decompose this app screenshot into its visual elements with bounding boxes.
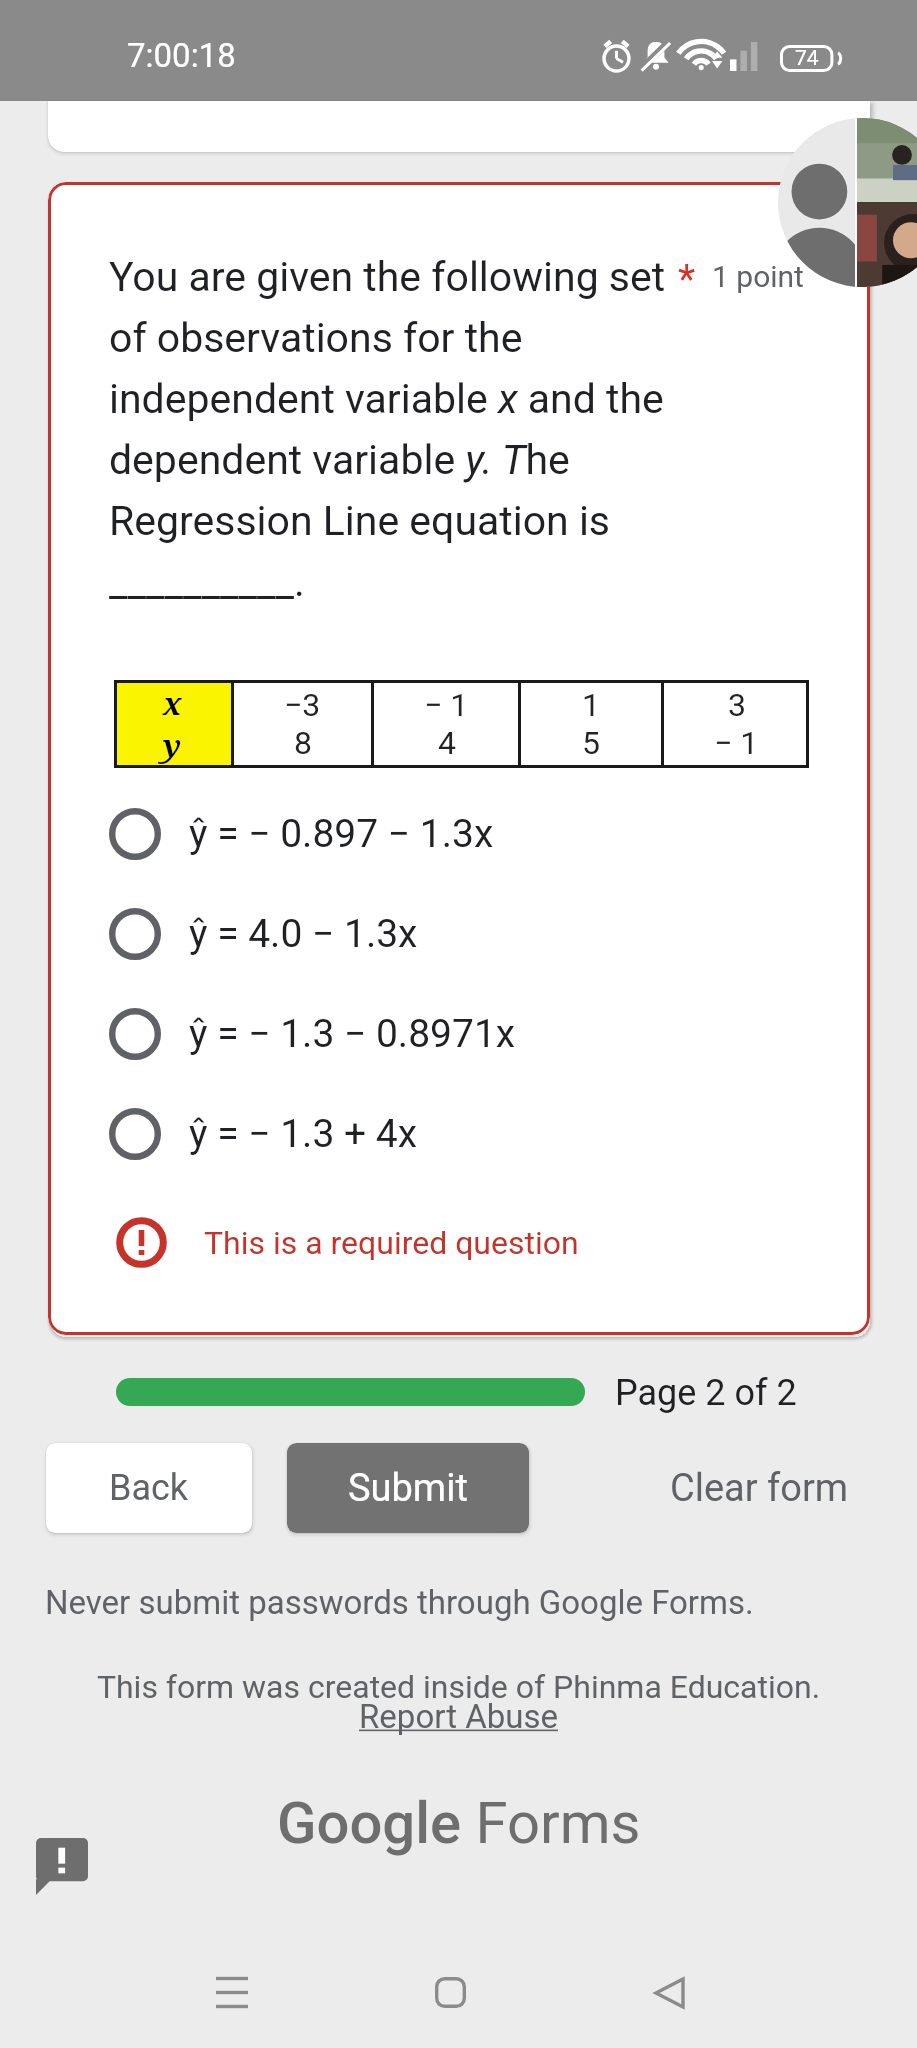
staticText: Clear form xyxy=(670,1466,849,1511)
staticText: Page 2 of 2 xyxy=(615,1372,797,1414)
staticText: − 1 xyxy=(714,724,759,762)
staticText: 5 xyxy=(582,724,600,762)
button[interactable]: Back xyxy=(629,1952,710,2033)
staticText: Submit xyxy=(348,1466,468,1511)
staticText: 1 xyxy=(582,686,600,724)
staticText: ŷ = 4.0 − 1.3x xyxy=(189,911,418,957)
staticText: x xyxy=(163,682,182,724)
staticText: ŷ = − 1.3 − 0.8971x xyxy=(189,1011,516,1057)
staticText: Never submit passwords through Google Fo… xyxy=(45,1583,754,1622)
staticText: You are given the following set of obser… xyxy=(109,253,689,606)
button[interactable]: Back xyxy=(46,1443,252,1533)
staticText: −3 xyxy=(284,686,321,724)
button[interactable]: Home xyxy=(410,1952,491,2033)
staticText: ŷ = − 0.897 − 1.3x xyxy=(189,811,494,857)
staticText: 8 xyxy=(294,724,312,762)
staticText: 74 xyxy=(795,46,819,71)
staticText: Report Abuse xyxy=(0,1697,917,1736)
staticText: Back xyxy=(109,1467,189,1509)
button[interactable]: Video call participant xyxy=(778,118,917,287)
button[interactable]: ŷ = 4.0 − 1.3x xyxy=(106,884,816,984)
button[interactable]: Info xyxy=(36,1838,88,1895)
staticText: This is a required question xyxy=(204,1224,579,1262)
staticText: This form was created inside of Phinma E… xyxy=(0,1668,917,1706)
button[interactable]: Clear form xyxy=(648,1443,871,1533)
button[interactable]: ŷ = − 0.897 − 1.3x xyxy=(106,784,816,884)
button[interactable]: Recent apps xyxy=(191,1952,272,2033)
button[interactable]: ŷ = − 1.3 − 0.8971x xyxy=(106,984,816,1084)
staticText: 1 point xyxy=(712,259,804,294)
staticText: y xyxy=(163,724,182,766)
staticText: 7:00:18 xyxy=(127,36,236,75)
staticText: * xyxy=(678,256,696,303)
button[interactable]: Submit xyxy=(287,1443,529,1533)
staticText: 3 xyxy=(728,686,746,724)
staticText: Google Forms xyxy=(277,1789,641,1857)
staticText: ŷ = − 1.3 + 4x xyxy=(189,1111,418,1157)
staticText: 4 xyxy=(438,724,456,762)
button[interactable]: ŷ = − 1.3 + 4x xyxy=(106,1084,816,1184)
staticText: − 1 xyxy=(424,686,469,724)
